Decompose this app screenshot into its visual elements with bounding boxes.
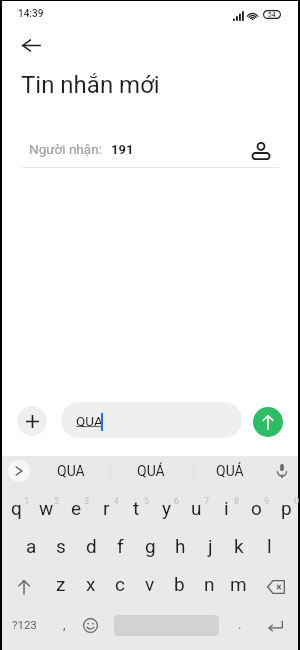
staticText: k: [234, 535, 244, 557]
button[interactable]: QUÁ: [119, 459, 183, 483]
staticText: 191: [111, 142, 134, 157]
staticText: 5: [144, 496, 150, 507]
staticText: .: [238, 617, 242, 632]
button[interactable]: Backspace: [257, 572, 294, 602]
button[interactable]: j: [195, 530, 225, 562]
button[interactable]: v: [135, 568, 165, 600]
button[interactable]: i: [211, 492, 241, 524]
button[interactable]: t: [121, 492, 151, 524]
staticText: t: [133, 497, 140, 519]
staticText: n: [204, 573, 215, 595]
button[interactable]: a: [16, 530, 46, 562]
staticText: v: [145, 573, 155, 595]
staticText: QUÁ: [137, 463, 165, 479]
staticText: 8: [234, 496, 240, 507]
staticText: g: [145, 535, 156, 557]
button[interactable]: q: [1, 492, 31, 524]
button[interactable]: f: [105, 530, 135, 562]
staticText: 4: [114, 496, 120, 507]
button[interactable]: Người nhận:: [2, 135, 298, 163]
button[interactable]: ,: [49, 608, 79, 640]
staticText: QUẢ: [216, 463, 244, 479]
staticText: QUA: [57, 463, 85, 479]
staticText: 9: [264, 496, 270, 507]
button[interactable]: m: [223, 568, 253, 600]
staticText: x: [86, 573, 96, 595]
staticText: r: [103, 497, 110, 519]
button[interactable]: Enter: [257, 609, 294, 641]
staticText: j: [208, 535, 213, 557]
button[interactable]: .: [225, 608, 255, 640]
button[interactable]: QUA: [39, 459, 103, 483]
staticText: Người nhận:: [29, 141, 102, 157]
staticText: p: [281, 497, 292, 519]
staticText: w: [39, 497, 54, 519]
button[interactable]: e: [61, 492, 91, 524]
button[interactable]: z: [46, 568, 76, 600]
button[interactable]: o: [241, 492, 271, 524]
button[interactable]: Emoji: [75, 609, 105, 641]
staticText: a: [26, 535, 37, 557]
button[interactable]: Voice input: [270, 459, 294, 483]
staticText: b: [174, 573, 185, 595]
staticText: y: [162, 497, 171, 519]
staticText: ?123: [12, 618, 37, 631]
button[interactable]: QUA: [61, 402, 242, 438]
button[interactable]: Back: [16, 31, 45, 60]
staticText: i: [224, 497, 229, 519]
button[interactable]: x: [76, 568, 106, 600]
button[interactable]: w: [31, 492, 61, 524]
staticText: 3: [84, 496, 90, 507]
button[interactable]: r: [91, 492, 121, 524]
button[interactable]: g: [135, 530, 165, 562]
button[interactable]: p: [271, 492, 300, 524]
button[interactable]: ?123: [6, 608, 42, 640]
staticText: f: [117, 535, 124, 557]
staticText: c: [115, 573, 125, 595]
staticText: 2: [54, 496, 60, 507]
button[interactable]: b: [164, 568, 194, 600]
staticText: s: [56, 535, 66, 557]
button[interactable]: Shift: [6, 572, 42, 602]
button[interactable]: u: [181, 492, 211, 524]
staticText: h: [175, 535, 186, 557]
button[interactable]: s: [46, 530, 76, 562]
button[interactable]: k: [224, 530, 254, 562]
button[interactable]: Send: [253, 407, 283, 437]
button[interactable]: d: [76, 530, 106, 562]
staticText: ,: [63, 617, 66, 632]
staticText: QUA: [76, 413, 103, 429]
staticText: 1: [24, 496, 30, 507]
staticText: d: [86, 535, 97, 557]
button[interactable]: y: [151, 492, 181, 524]
staticText: 0: [294, 496, 300, 507]
staticText: l: [267, 535, 272, 557]
button[interactable]: c: [105, 568, 135, 600]
button[interactable]: l: [254, 530, 284, 562]
staticText: m: [230, 573, 247, 595]
button[interactable]: h: [165, 530, 195, 562]
staticText: o: [251, 497, 262, 519]
button[interactable]: QUẢ: [198, 459, 262, 483]
staticText: Tin nhắn mới: [21, 71, 160, 99]
button[interactable]: Choose contact: [247, 134, 276, 163]
button[interactable]: Show more suggestions: [8, 460, 30, 482]
button[interactable]: Add attachment: [17, 406, 47, 436]
staticText: 7: [204, 496, 210, 507]
staticText: 6: [174, 496, 180, 507]
button[interactable]: n: [194, 568, 224, 600]
staticText: z: [56, 573, 66, 595]
staticText: q: [11, 497, 22, 519]
staticText: e: [71, 497, 82, 519]
staticText: 54: [268, 11, 276, 19]
staticText: u: [191, 497, 202, 519]
staticText: 14:39: [18, 8, 44, 20]
